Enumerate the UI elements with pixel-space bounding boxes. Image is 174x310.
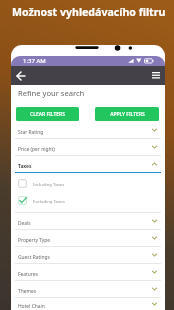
button[interactable]: Star Rating <box>11 122 165 139</box>
button[interactable]: Back <box>11 66 30 85</box>
button[interactable]: Themes <box>11 281 165 298</box>
button[interactable]: Hotel Chain <box>11 298 165 310</box>
staticText: Features <box>18 271 38 278</box>
button[interactable]: Including Taxes <box>18 175 157 192</box>
button[interactable]: Price (per night) <box>11 139 165 156</box>
button[interactable]: APPLY FILTERS <box>95 107 159 121</box>
staticText: Deals <box>18 220 31 227</box>
button[interactable]: Taxes <box>11 156 165 173</box>
staticText: Excluding Taxes <box>33 198 65 204</box>
staticText: APPLY FILTERS <box>110 111 145 118</box>
staticText: Refine your search <box>18 88 85 98</box>
button[interactable]: Property Type <box>11 230 165 247</box>
staticText: Price (per night) <box>18 146 55 153</box>
button[interactable]: Excluding Taxes <box>18 192 157 209</box>
staticText: Taxes <box>18 163 32 170</box>
staticText: Možnost vyhledávacího filtru <box>12 5 166 19</box>
staticText: Star Rating <box>18 129 44 136</box>
staticText: Themes <box>18 288 37 295</box>
staticText: Guest Ratings <box>18 254 50 261</box>
button[interactable]: CLEAR FILTERS <box>16 107 79 121</box>
button[interactable]: Menu <box>146 66 165 85</box>
button[interactable]: Features <box>11 264 165 281</box>
staticText: Including Taxes <box>33 181 65 187</box>
staticText: 1:37 AM <box>23 57 46 65</box>
button[interactable]: Deals <box>11 213 165 230</box>
staticText: CLEAR FILTERS <box>30 111 65 118</box>
staticText: Property Type <box>18 237 51 244</box>
button[interactable]: Guest Ratings <box>11 247 165 264</box>
staticText: Hotel Chain <box>18 303 45 310</box>
